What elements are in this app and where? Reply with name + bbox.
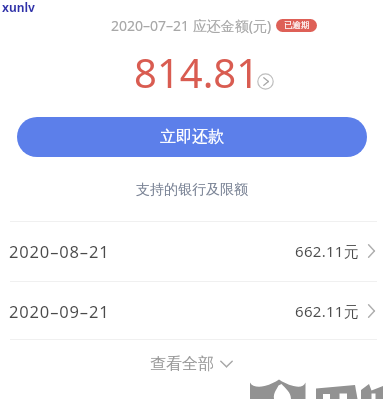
staticText: 2020–09–21 — [9, 300, 110, 322]
staticText: xunlv — [2, 0, 35, 15]
staticText: 查看全部 — [150, 354, 214, 374]
staticText: 814.81 — [134, 45, 260, 93]
button[interactable]: 支持的银行及限额 — [0, 180, 383, 200]
staticText: 支持的银行及限额 — [136, 181, 248, 199]
button[interactable]: 立即还款 — [17, 117, 367, 157]
staticText: 2020–07–21 应还金额(元) — [111, 16, 272, 34]
button[interactable]: Bill details — [257, 73, 274, 90]
staticText: 立即还款 — [160, 127, 224, 147]
staticText: 662.11元 — [295, 241, 360, 261]
button[interactable]: 2020–08–21 — [0, 221, 383, 281]
staticText: 已逾期 — [284, 20, 310, 31]
button[interactable]: 2020–09–21 — [0, 281, 383, 341]
staticText: 2020–08–21 — [9, 240, 110, 262]
button[interactable]: 查看全部 — [0, 352, 383, 376]
staticText: 662.11元 — [295, 301, 360, 321]
